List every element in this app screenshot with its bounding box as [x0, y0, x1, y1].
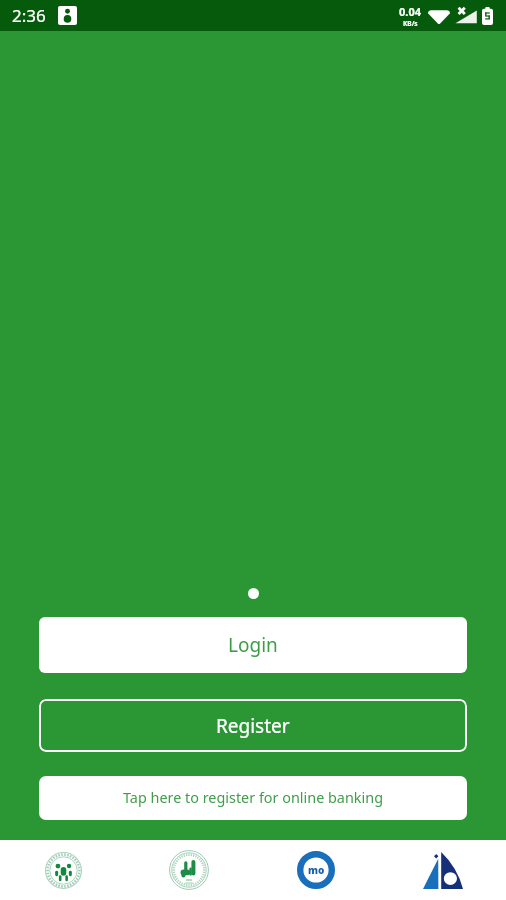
staticText: mo	[308, 863, 325, 877]
staticText: Login	[228, 632, 278, 658]
button[interactable]: Sail logo	[379, 840, 506, 900]
staticText: Register	[216, 713, 290, 739]
button[interactable]: Tap here to register for online banking	[39, 776, 467, 820]
button[interactable]: Mobile banking app	[252, 840, 379, 900]
button[interactable]: Login	[39, 617, 467, 673]
staticText: KB/s	[403, 19, 418, 28]
button[interactable]: Government seal	[0, 840, 126, 900]
staticText: Tap here to register for online banking	[123, 788, 383, 808]
staticText: 2:36	[12, 4, 46, 27]
staticText: 0.04	[399, 4, 421, 19]
button[interactable]: Bank seal	[126, 840, 252, 900]
button[interactable]: Register	[39, 699, 467, 752]
